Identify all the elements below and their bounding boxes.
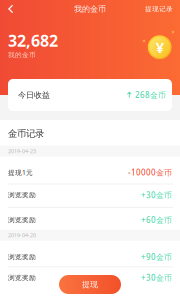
button[interactable]: 浏览奖励: [0, 245, 180, 268]
staticText: 提现1元: [8, 168, 33, 177]
button[interactable]: 提现1元: [0, 161, 180, 184]
staticText: 浏览奖励: [8, 191, 36, 199]
button[interactable]: 浏览奖励: [0, 184, 180, 207]
staticText: 今日收益: [18, 90, 50, 100]
staticText: 提现记录: [145, 5, 173, 13]
staticText: 提现: [82, 280, 98, 289]
button[interactable]: 浏览奖励: [0, 266, 180, 289]
staticText: ¥: [156, 37, 164, 57]
staticText: 32,682: [8, 30, 58, 51]
staticText: +60金币: [141, 215, 172, 225]
staticText: -10000金币: [128, 167, 172, 178]
button[interactable]: 提现记录: [138, 0, 180, 18]
staticText: 我的金币: [74, 4, 106, 14]
button[interactable]: 提现: [59, 275, 121, 294]
button[interactable]: 浏览奖励: [0, 208, 180, 231]
staticText: 浏览奖励: [8, 216, 36, 224]
button[interactable]: Back: [0, 0, 22, 18]
staticText: 268金币: [135, 90, 166, 100]
staticText: 浏览奖励: [8, 274, 36, 282]
staticText: +30金币: [141, 272, 172, 283]
staticText: +90金币: [141, 252, 172, 262]
staticText: 2019-04-20: [8, 232, 36, 239]
staticText: 2019-04-23: [8, 148, 36, 155]
staticText: 浏览奖励: [8, 253, 36, 261]
staticText: +30金币: [141, 190, 172, 200]
staticText: 金币记录: [8, 128, 44, 139]
staticText: 我的金币: [8, 51, 36, 59]
